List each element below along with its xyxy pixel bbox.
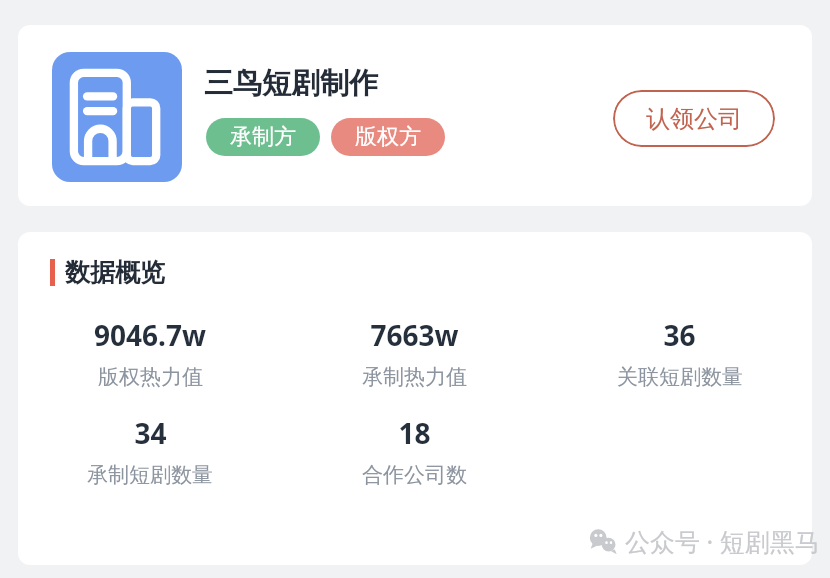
button[interactable]: 承制方 — [206, 118, 320, 156]
button[interactable]: 公司头像 — [52, 52, 182, 182]
button[interactable]: 认领公司 — [613, 90, 775, 147]
staticText: 合作公司数 — [362, 462, 467, 488]
staticText: 承制短剧数量 — [87, 462, 213, 488]
staticText: 认领公司 — [646, 104, 742, 134]
staticText: 9046.7w — [94, 316, 206, 354]
staticText: 公众号 · 短剧黑马 — [625, 524, 820, 558]
staticText: 36 — [663, 316, 696, 354]
staticText: 7663w — [370, 316, 459, 354]
button[interactable]: 36 — [547, 316, 812, 390]
staticText: 18 — [398, 414, 431, 452]
staticText: 版权方 — [355, 123, 421, 151]
staticText: 三鸟短剧制作 — [204, 65, 378, 102]
staticText: 数据概览 — [65, 257, 165, 288]
button[interactable]: 9046.7w — [18, 316, 282, 390]
button[interactable]: 7663w — [282, 316, 547, 390]
staticText: 承制方 — [230, 123, 296, 151]
staticText: 34 — [134, 414, 167, 452]
staticText: 关联短剧数量 — [617, 364, 743, 390]
staticText: 承制热力值 — [362, 364, 467, 390]
staticText: 版权热力值 — [98, 364, 203, 390]
button[interactable]: 版权方 — [331, 118, 445, 156]
button[interactable]: 18 — [282, 414, 547, 488]
button[interactable]: 34 — [18, 414, 282, 488]
